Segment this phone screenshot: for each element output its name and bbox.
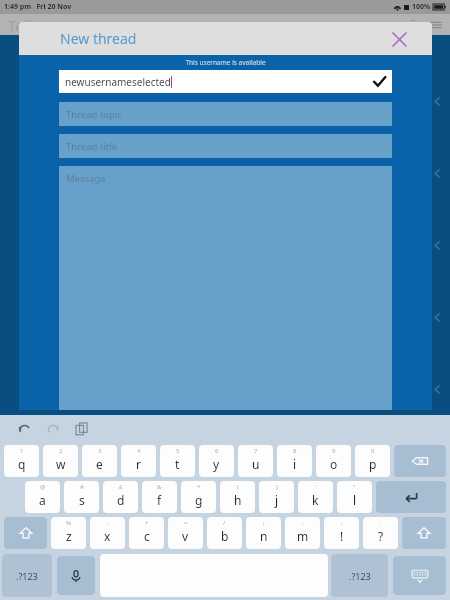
staticText: .?123 [349,570,371,582]
staticText: f [157,492,162,508]
button[interactable]: Hide keyboard [393,556,446,595]
staticText: w [56,456,66,472]
staticText: z [66,528,72,544]
button[interactable]: Paste [72,419,92,439]
button[interactable]: # [64,481,99,513]
staticText: 6 [215,447,219,455]
staticText: & [157,483,162,491]
staticText: i [293,456,297,472]
staticText: r [136,456,141,472]
staticText: 9 [332,447,336,455]
staticText: 100% [412,2,431,12]
staticText: s [79,492,85,508]
button[interactable]: Shift [4,517,47,549]
staticText: + [145,519,149,527]
button[interactable]: Redo [43,419,63,439]
staticText: * [197,483,201,491]
staticText: ' [315,483,317,491]
staticText: . [380,519,382,527]
staticText: 0 [371,447,375,455]
button[interactable]: Thread topic [59,102,392,126]
staticText: % [66,519,71,527]
button[interactable]: ( [220,481,255,513]
button[interactable]: & [142,481,177,513]
button[interactable]: 0 [355,445,390,477]
button[interactable]: 1 [4,445,39,477]
button[interactable]: ; [246,517,281,549]
staticText: 3 [98,447,102,455]
staticText: : [302,519,304,527]
button[interactable]: * [181,481,216,513]
button[interactable]: Voice input [57,556,95,595]
button[interactable]: 7 [238,445,273,477]
staticText: 1 [20,447,24,455]
staticText: , [341,519,343,527]
button[interactable]: / [207,517,242,549]
button[interactable]: newusernameselected [59,70,392,93]
staticText: ( [237,483,239,491]
staticText: .?123 [16,570,38,582]
button[interactable]: 2 [43,445,78,477]
staticText: Message [66,172,106,185]
button[interactable]: Close [388,28,410,50]
staticText: 7 [254,447,258,455]
button[interactable]: .?123 [331,554,388,597]
staticText: - [107,519,109,527]
staticText: m [297,528,309,544]
button[interactable]: : [285,517,320,549]
staticText: " [353,483,356,491]
button[interactable]: . [363,517,398,549]
button[interactable]: 5 [160,445,195,477]
staticText: 1:49 pm Fri 20 Nov [4,2,72,12]
staticText: 8 [293,447,297,455]
other: Search [408,19,420,31]
button[interactable]: Backspace [394,445,446,477]
button[interactable]: Undo [14,419,34,439]
staticText: Talk [8,15,36,35]
staticText: 4 [137,447,141,455]
staticText: q [18,456,26,472]
button[interactable]: ' [298,481,333,513]
button[interactable]: 9 [316,445,351,477]
staticText: o [330,456,338,472]
button[interactable]: Enter [376,481,446,513]
button[interactable]: Thread title [59,134,392,158]
button[interactable]: £ [103,481,138,513]
button[interactable]: + [129,517,164,549]
staticText: / [223,519,226,527]
staticText: h [234,492,242,508]
staticText: @ [40,483,46,491]
staticText: ? [378,528,384,544]
staticText: j [275,492,279,508]
button[interactable]: Shift [402,517,446,549]
button[interactable]: 8 [277,445,312,477]
staticText: x [104,528,111,544]
staticText: u [252,456,260,472]
staticText: This username is available [59,58,392,67]
button[interactable]: , [324,517,359,549]
staticText: 2 [59,447,63,455]
staticText: p [369,456,377,472]
staticText: Thread topic [66,108,122,121]
button[interactable]: @ [25,481,60,513]
button[interactable]: 6 [199,445,234,477]
button[interactable]: % [51,517,86,549]
staticText: t [175,456,180,472]
staticText: # [80,483,84,491]
button[interactable]: .?123 [2,554,52,597]
staticText: Thread title [66,140,118,153]
button[interactable]: = [168,517,203,549]
staticText: k [312,492,319,508]
staticText: e [96,456,103,472]
button[interactable]: - [90,517,125,549]
staticText: newusernameselected [65,75,171,89]
staticText: b [221,528,229,544]
staticText: a [39,492,46,508]
button[interactable]: " [337,481,372,513]
button[interactable]: 4 [121,445,156,477]
staticText: ) [276,483,278,491]
button[interactable]: ) [259,481,294,513]
button[interactable]: 3 [82,445,117,477]
